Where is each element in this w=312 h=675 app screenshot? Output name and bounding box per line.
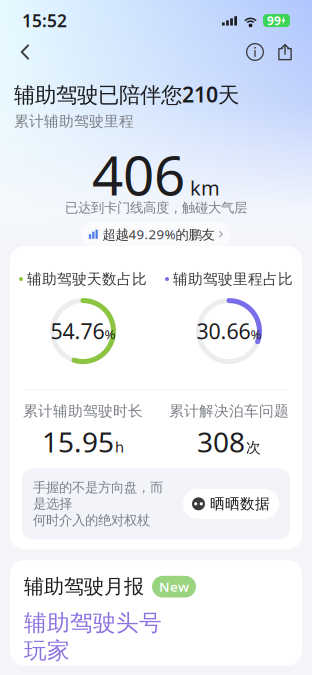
- staticText: 累计辅助驾驶里程: [14, 112, 134, 130]
- staticText: 手握的不是方向盘，而是选择 何时介入的绝对权杖: [33, 479, 163, 528]
- staticText: 54.76: [50, 317, 104, 345]
- button[interactable]: Share: [270, 38, 300, 66]
- button[interactable]: 超越49.29%的鹏友: [80, 222, 231, 246]
- staticText: 次: [246, 439, 261, 457]
- staticText: 30.66: [196, 317, 250, 345]
- staticText: 累计解决泊车问题: [169, 402, 289, 420]
- staticText: 超越49.29%的鹏友: [102, 225, 214, 243]
- staticText: 已达到卡门线高度，触碰大气层: [65, 200, 247, 216]
- staticText: 99: [267, 12, 281, 28]
- staticText: 累计辅助驾驶时长: [23, 402, 143, 420]
- staticText: %: [104, 325, 115, 343]
- staticText: h: [115, 437, 124, 457]
- staticText: %: [250, 325, 261, 343]
- button[interactable]: 晒晒数据: [183, 489, 279, 519]
- staticText: 辅助驾驶月报: [24, 574, 144, 599]
- button[interactable]: Back: [9, 38, 41, 66]
- staticText: 辅助驾驶头号 玩家: [24, 609, 162, 665]
- staticText: 308: [197, 423, 245, 460]
- button[interactable]: Information: [240, 38, 270, 66]
- staticText: 晒晒数据: [210, 495, 270, 513]
- staticText: km: [190, 174, 220, 201]
- staticText: 406: [92, 138, 185, 211]
- staticText: 辅助驾驶里程占比: [173, 270, 293, 288]
- staticText: 辅助驾驶已陪伴您210天: [14, 80, 239, 108]
- staticText: 辅助驾驶天数占比: [27, 270, 147, 288]
- staticText: New: [159, 578, 189, 595]
- staticText: 15:52: [22, 9, 67, 32]
- staticText: 15.95: [42, 423, 114, 460]
